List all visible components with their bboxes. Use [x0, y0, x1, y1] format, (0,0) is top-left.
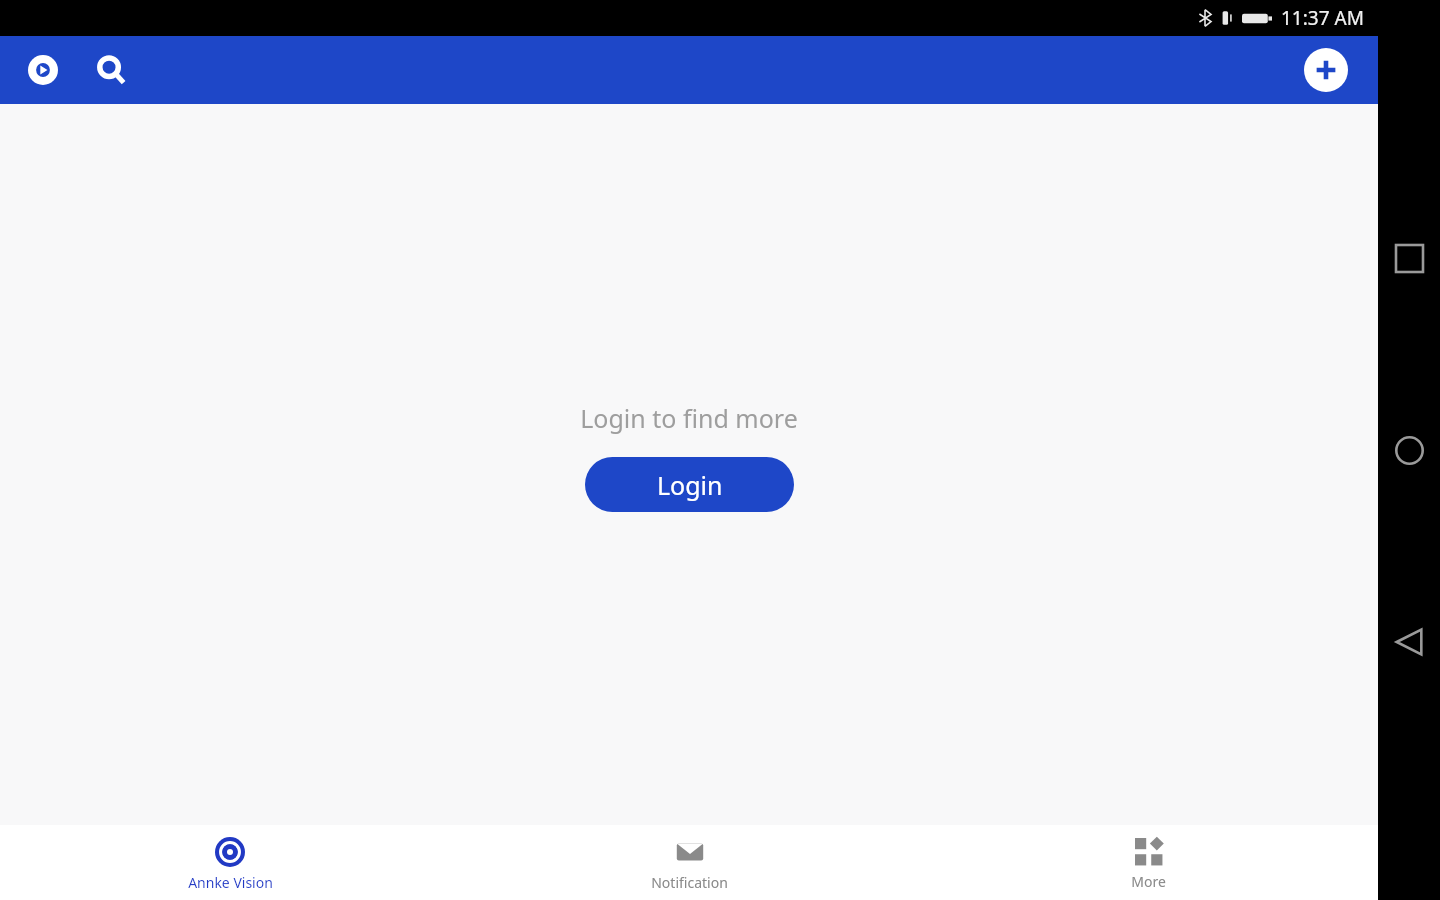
staticText: 11:37 AM: [1281, 5, 1364, 31]
button[interactable]: Add: [1304, 48, 1348, 92]
button[interactable]: Annke Vision logo: [20, 47, 66, 93]
button[interactable]: Annke Vision: [0, 825, 460, 900]
staticText: Notification: [651, 873, 728, 892]
button[interactable]: Search: [88, 47, 134, 93]
button[interactable]: Recents: [1387, 236, 1431, 280]
button[interactable]: Notification: [460, 825, 919, 900]
button[interactable]: Home: [1387, 428, 1431, 472]
button[interactable]: Login: [585, 457, 794, 512]
staticText: Annke Vision: [188, 873, 273, 892]
button[interactable]: Back: [1387, 620, 1431, 664]
staticText: Login: [657, 468, 723, 502]
button[interactable]: More: [919, 825, 1378, 900]
staticText: More: [1131, 872, 1166, 891]
staticText: Login to find more: [580, 401, 798, 435]
